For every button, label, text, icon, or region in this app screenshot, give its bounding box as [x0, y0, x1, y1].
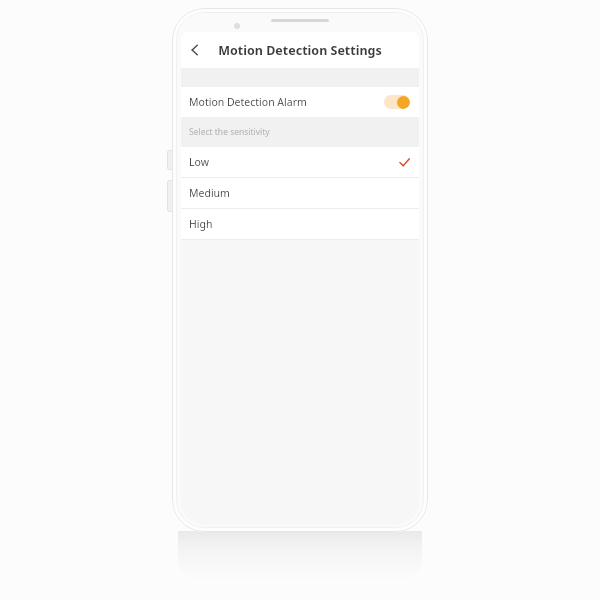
staticText: Motion Detection Settings: [218, 42, 382, 59]
button[interactable]: Motion Detection Alarm: [181, 87, 419, 117]
button[interactable]: High: [181, 209, 419, 239]
button[interactable]: Back: [181, 36, 209, 64]
staticText: Select the sensitivity: [189, 126, 270, 138]
staticText: Motion Detection Alarm: [189, 95, 307, 109]
button[interactable]: Low: [181, 147, 419, 177]
staticText: Low: [189, 155, 209, 169]
button[interactable]: Medium: [181, 178, 419, 208]
staticText: High: [189, 217, 213, 231]
staticText: Medium: [189, 186, 230, 200]
